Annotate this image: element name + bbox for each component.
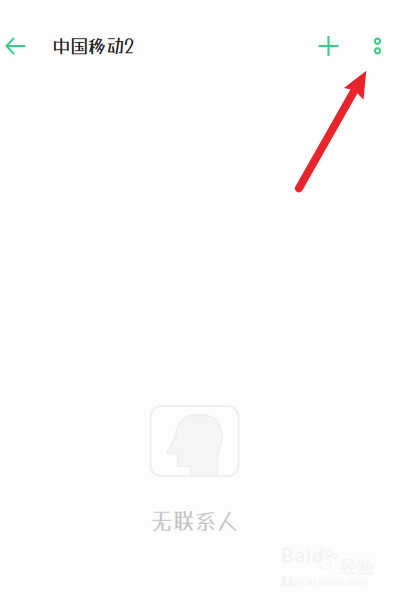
- button[interactable]: Back: [0, 18, 31, 74]
- staticText: 无联系人: [150, 508, 238, 534]
- staticText: 中国移动2: [52, 35, 134, 57]
- staticText: jingyan.baidu.com: [281, 576, 368, 588]
- button[interactable]: More options: [355, 18, 400, 74]
- staticText: 经验: [340, 557, 374, 578]
- staticText: Baidu: [281, 543, 333, 592]
- button[interactable]: Add contact: [302, 18, 355, 74]
